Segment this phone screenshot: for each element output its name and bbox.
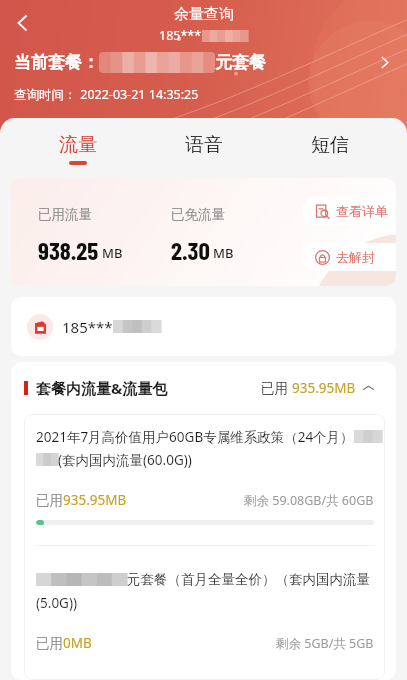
staticText: MB: [102, 244, 123, 262]
staticText: 2021年7月高价值用户60GB专属维系政策（24个月）: [36, 428, 354, 446]
staticText: 余量查询: [174, 5, 234, 24]
button[interactable]: 语音: [141, 118, 267, 178]
button[interactable]: 套餐内流量&流量包: [11, 362, 396, 414]
staticText: (5.0G)): [36, 594, 78, 612]
staticText: 2022-03-21 14:35:25: [77, 86, 199, 103]
staticText: 185***: [159, 27, 202, 44]
staticText: 0MB: [63, 634, 92, 652]
button[interactable]: 查看详单: [302, 197, 396, 225]
staticText: 元套餐: [215, 52, 266, 73]
staticText: 935.95MB: [63, 491, 127, 509]
staticText: 语音: [185, 133, 223, 157]
staticText: 已用: [36, 492, 63, 509]
button[interactable]: 去解封: [302, 243, 396, 271]
button[interactable]: 流量: [14, 118, 141, 178]
button[interactable]: 当前套餐：: [0, 47, 407, 77]
button[interactable]: 短信: [267, 118, 393, 178]
staticText: 短信: [311, 133, 349, 157]
staticText: 2.30: [171, 235, 210, 265]
staticText: 去解封: [336, 249, 375, 265]
staticText: 935.95MB: [292, 379, 356, 397]
staticText: 元套餐（首月全量全价）（套内国内流量: [127, 571, 370, 588]
staticText: 已用流量: [38, 206, 92, 223]
staticText: 查看详单: [336, 203, 388, 219]
staticText: 已免流量: [171, 206, 225, 223]
staticText: 已用: [36, 635, 63, 652]
staticText: 185***: [62, 317, 113, 337]
button[interactable]: 185***: [11, 297, 396, 356]
staticText: (套内国内流量(60.0G)): [58, 451, 192, 469]
staticText: 查询时间：: [14, 87, 77, 103]
staticText: 已用: [261, 379, 292, 397]
button[interactable]: Back: [6, 6, 40, 40]
staticText: 当前套餐：: [14, 52, 99, 73]
staticText: 938.25: [38, 235, 99, 265]
staticText: 流量: [59, 133, 97, 157]
staticText: 剩余 5GB/共 5GB: [276, 635, 374, 652]
staticText: 套餐内流量&流量包: [36, 378, 168, 398]
staticText: 剩余 59.08GB/共 60GB: [244, 492, 374, 509]
staticText: MB: [213, 244, 234, 262]
